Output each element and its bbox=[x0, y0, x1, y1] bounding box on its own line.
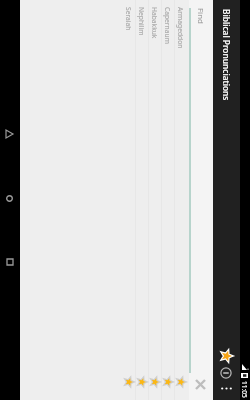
button[interactable]: Clear bbox=[191, 374, 211, 394]
staticText: Habakkuk bbox=[150, 7, 159, 39]
button[interactable]: More options bbox=[213, 381, 240, 396]
button[interactable]: Armageddon bbox=[174, 0, 187, 400]
button[interactable]: Nephilim bbox=[135, 0, 148, 400]
staticText: Capernaum bbox=[163, 7, 172, 44]
staticText: Nephilim bbox=[137, 7, 146, 36]
button[interactable]: Home bbox=[0, 166, 20, 230]
staticText: Find bbox=[195, 8, 206, 24]
staticText: Biblical Pronunciations bbox=[221, 9, 232, 101]
button[interactable]: Seraiah bbox=[123, 0, 135, 400]
button[interactable]: Back bbox=[0, 102, 20, 166]
button[interactable]: Mute bbox=[213, 365, 240, 381]
button[interactable]: Capernaum bbox=[161, 0, 174, 400]
staticText: 11:05 bbox=[240, 381, 249, 398]
button[interactable]: Favourites bbox=[213, 346, 240, 365]
staticText: Armageddon bbox=[176, 7, 185, 49]
staticText: Seraiah bbox=[124, 7, 133, 31]
button[interactable]: Recents bbox=[0, 230, 20, 294]
button[interactable]: Habakkuk bbox=[148, 0, 161, 400]
